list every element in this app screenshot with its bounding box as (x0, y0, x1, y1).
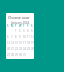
staticText: 12 (31, 35, 34, 39)
staticText: 19 (31, 41, 34, 45)
staticText: 30 (19, 53, 22, 57)
staticText: 16 (19, 41, 22, 45)
staticText: 6 (7, 35, 9, 39)
staticText: 27 (7, 53, 10, 57)
staticText: 23 (19, 47, 22, 51)
staticText: 3 (23, 29, 25, 33)
staticText: S (7, 24, 9, 28)
staticText: Choose your date (8, 15, 32, 19)
staticText: 18 (27, 41, 30, 45)
staticText: 21 (11, 47, 14, 51)
staticText: 14 (11, 41, 14, 45)
staticText: 5 (31, 29, 33, 33)
staticText: 13 (7, 41, 10, 45)
staticText: 17 (23, 41, 26, 45)
staticText: 2 (19, 29, 21, 33)
staticText: 10 (23, 35, 26, 39)
staticText: 9 (19, 35, 21, 39)
staticText: 11 (27, 35, 30, 39)
staticText: F (27, 24, 29, 28)
staticText: T (15, 24, 17, 28)
staticText: 31 (23, 53, 26, 57)
staticText: W (19, 24, 22, 28)
staticText: 29 (15, 53, 18, 57)
staticText: 24 (23, 47, 26, 51)
staticText: 7 (11, 35, 13, 39)
staticText: 8 (15, 35, 17, 39)
staticText: 1 (15, 29, 17, 33)
staticText: 20 (7, 47, 10, 51)
staticText: 25 (27, 47, 30, 51)
staticText: 22 (15, 47, 18, 51)
staticText: S (31, 24, 33, 28)
staticText: T (23, 24, 25, 28)
staticText: 26 (31, 47, 34, 51)
staticText: 4 (27, 29, 29, 33)
staticText: 15 (15, 41, 18, 45)
staticText: M (11, 24, 14, 28)
staticText: January 2024 (11, 21, 30, 25)
staticText: 28 (11, 53, 14, 57)
